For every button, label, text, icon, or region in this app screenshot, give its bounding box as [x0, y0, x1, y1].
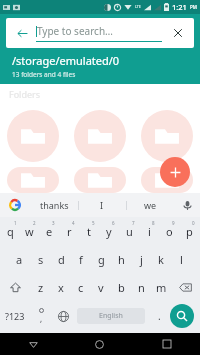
button[interactable]: v	[91, 273, 111, 301]
staticText: s	[38, 252, 44, 267]
button[interactable]: Change language	[52, 301, 74, 331]
button[interactable]: m	[151, 273, 171, 301]
staticText: 1:21	[172, 2, 187, 12]
button[interactable]: Search	[170, 304, 194, 328]
button[interactable]	[0, 167, 66, 193]
button[interactable]: Recent apps	[133, 333, 200, 355]
button[interactable]: Add	[160, 157, 190, 187]
staticText: I	[100, 199, 104, 211]
staticText: Type to search…	[37, 24, 113, 38]
button[interactable]	[133, 105, 200, 167]
staticText: 7	[132, 220, 135, 226]
staticText: 1	[14, 220, 17, 226]
button[interactable]: z	[30, 273, 51, 301]
button[interactable]: r	[59, 217, 79, 245]
staticText: q	[7, 224, 14, 239]
staticText: e	[46, 224, 53, 239]
button[interactable]: Back	[12, 23, 32, 43]
button[interactable]: I	[78, 193, 126, 217]
button[interactable]: Clear search	[168, 23, 188, 43]
staticText: n	[138, 280, 145, 295]
staticText: 0	[192, 220, 195, 226]
staticText: /storage/emulated/0	[12, 53, 120, 68]
button[interactable]: we	[126, 193, 174, 217]
staticText: f	[79, 252, 83, 267]
staticText: 6	[112, 220, 115, 226]
button[interactable]: Shift	[0, 273, 30, 301]
button[interactable]: k	[151, 245, 171, 273]
staticText: j	[140, 252, 143, 267]
button[interactable]	[66, 167, 133, 193]
staticText: 5	[92, 220, 95, 226]
staticText: 8	[152, 220, 155, 226]
staticText: thanks	[40, 199, 69, 211]
button[interactable]: f	[71, 245, 91, 273]
button[interactable]: English	[77, 308, 145, 324]
button[interactable]: l	[171, 245, 191, 273]
staticText: PM	[190, 4, 197, 10]
staticText: h	[118, 252, 125, 267]
button[interactable]: Backspace	[171, 273, 200, 301]
button[interactable]: q	[1, 217, 20, 245]
staticText: u	[126, 224, 133, 239]
button[interactable]: o	[159, 217, 179, 245]
staticText: y	[106, 224, 112, 239]
staticText: d	[58, 252, 65, 267]
button[interactable]: u	[119, 217, 139, 245]
button[interactable]: h	[111, 245, 131, 273]
staticText: 9	[172, 220, 175, 226]
staticText: 3	[52, 220, 55, 226]
button[interactable]: s	[30, 245, 51, 273]
staticText: o	[166, 224, 173, 239]
staticText: r	[67, 224, 72, 239]
button[interactable]: Back	[0, 333, 66, 355]
button[interactable]	[0, 105, 66, 167]
staticText: g	[98, 252, 105, 267]
button[interactable]: c	[71, 273, 91, 301]
staticText: 2	[33, 220, 36, 226]
button[interactable]: j	[131, 245, 151, 273]
staticText: 13 folders and 4 files	[12, 70, 76, 79]
staticText: m	[156, 280, 167, 295]
button[interactable]: n	[131, 273, 151, 301]
staticText: c	[78, 280, 84, 295]
button[interactable]: e	[39, 217, 59, 245]
staticText: b	[118, 280, 125, 295]
button[interactable]: p	[179, 217, 199, 245]
staticText: k	[158, 252, 164, 267]
staticText: Folders	[9, 88, 41, 100]
staticText: l	[180, 252, 183, 267]
button[interactable]: i	[139, 217, 159, 245]
staticText: LTE	[135, 4, 141, 9]
staticText: i	[148, 224, 151, 239]
staticText: p	[186, 224, 193, 239]
staticText: ,	[40, 313, 43, 324]
staticText: English	[99, 311, 123, 321]
button[interactable]: w	[20, 217, 39, 245]
button[interactable]: thanks	[30, 193, 78, 217]
button[interactable]	[66, 105, 133, 167]
staticText: .	[158, 309, 161, 323]
staticText: we	[144, 199, 157, 211]
button[interactable]: b	[111, 273, 131, 301]
button[interactable]: Voice input	[174, 193, 200, 217]
staticText: v	[98, 280, 104, 295]
button[interactable]	[133, 167, 200, 193]
staticText: ?123	[5, 310, 25, 322]
staticText: x	[58, 280, 64, 295]
staticText: w	[25, 224, 34, 239]
button[interactable]: x	[51, 273, 71, 301]
button[interactable]: .	[148, 301, 170, 331]
staticText: z	[38, 280, 44, 295]
staticText: t	[87, 224, 91, 239]
button[interactable]: ?123	[0, 301, 30, 331]
staticText: a	[16, 252, 23, 267]
button[interactable]: Home	[66, 333, 133, 355]
button[interactable]: d	[51, 245, 71, 273]
button[interactable]: t	[79, 217, 99, 245]
staticText: 4	[72, 220, 75, 226]
button[interactable]: g	[91, 245, 111, 273]
button[interactable]: a	[9, 245, 30, 273]
button[interactable]: y	[99, 217, 119, 245]
button[interactable]: Emoji and comma	[30, 301, 52, 331]
